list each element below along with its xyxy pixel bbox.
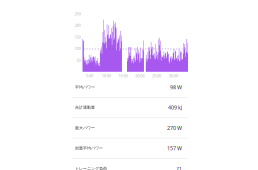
staticText: 270 W (167, 124, 182, 131)
staticText: 10:00 (102, 73, 111, 78)
staticText: トレーニング負荷 (75, 166, 107, 170)
button[interactable]: 平均パワー (72, 77, 188, 98)
button[interactable]: 合計運動量 (72, 98, 188, 118)
staticText: 5:00 (86, 73, 93, 78)
button[interactable]: 加重平均パワー (72, 138, 188, 159)
button[interactable]: トレーニング負荷 (72, 159, 188, 170)
staticText: 25:00 (152, 73, 161, 78)
staticText: 100 (74, 46, 80, 51)
staticText: 157 W (167, 145, 182, 152)
staticText: 最大パワー (75, 125, 95, 130)
staticText: 30:00 (169, 73, 178, 78)
button[interactable]: 最大パワー (72, 118, 188, 138)
staticText: 50 (76, 57, 80, 63)
staticText: 加重平均パワー (75, 146, 103, 151)
staticText: 20:00 (135, 73, 144, 78)
staticText: 250 (74, 11, 80, 16)
staticText: 15:00 (118, 73, 127, 78)
staticText: 98 W (170, 84, 182, 91)
staticText: 409 kJ (168, 104, 182, 111)
staticText: 平均パワー (75, 85, 95, 90)
staticText: 合計運動量 (75, 105, 95, 110)
staticText: 71 (176, 165, 182, 170)
staticText: 150 (74, 34, 80, 39)
staticText: 200 (74, 23, 80, 28)
